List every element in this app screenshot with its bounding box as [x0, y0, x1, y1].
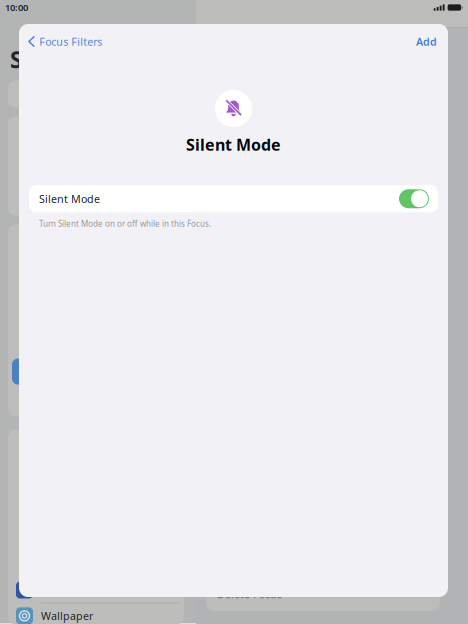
button[interactable]: Silent Mode: [29, 185, 438, 212]
staticText: 10:00: [5, 1, 28, 14]
staticText: Silent Mode: [39, 192, 100, 206]
staticText: Silent Mode: [186, 134, 281, 155]
staticText: Focus Filters: [39, 34, 102, 49]
staticText: Turn Silent Mode on or off while in this…: [39, 218, 211, 229]
button[interactable]: Add: [405, 28, 448, 55]
staticText: Wallpaper: [41, 609, 93, 623]
staticText: Add: [416, 34, 437, 49]
button[interactable]: Focus Filters: [19, 28, 110, 55]
staticText: Settings: [10, 44, 103, 74]
staticText: Delete Focus: [217, 587, 282, 601]
